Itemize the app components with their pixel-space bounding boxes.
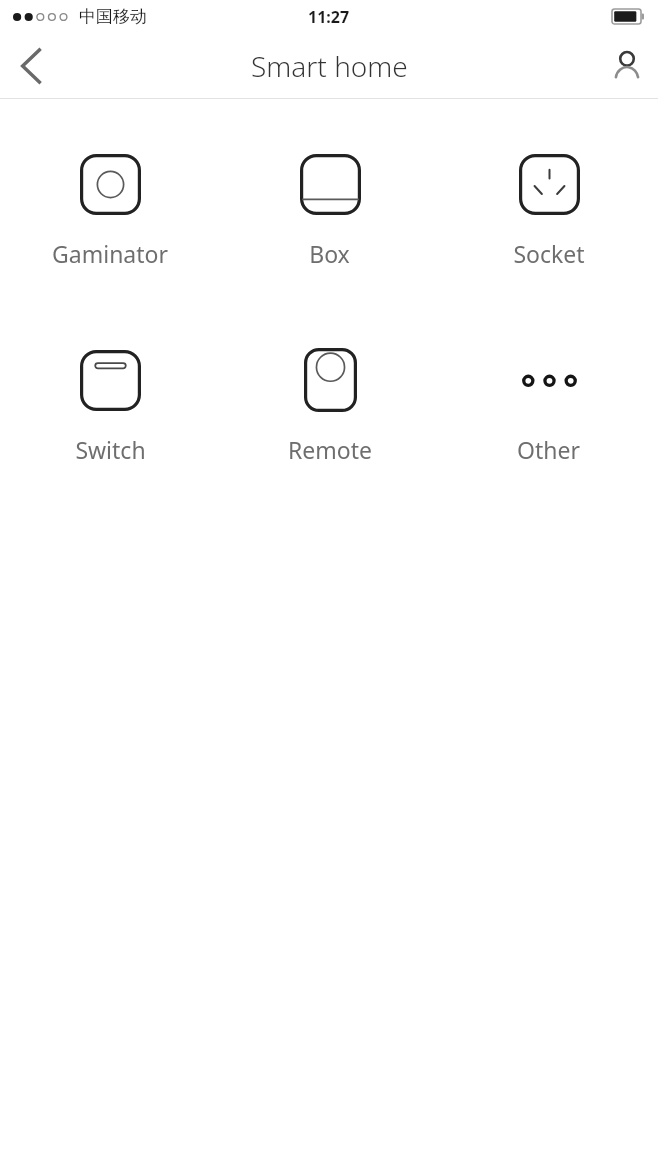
staticText: Gaminator (52, 238, 168, 269)
button[interactable]: Socket (439, 145, 658, 275)
button[interactable]: Remote (220, 341, 439, 471)
button[interactable]: Other (439, 341, 658, 471)
button[interactable]: Gaminator (0, 145, 220, 275)
button[interactable]: Account (596, 35, 658, 97)
staticText: Smart home (251, 47, 408, 85)
staticText: 中国移动 (79, 6, 147, 27)
staticText: Switch (75, 434, 146, 465)
button[interactable]: Switch (0, 341, 220, 471)
staticText: Socket (513, 238, 585, 269)
staticText: 11:27 (308, 6, 350, 28)
button[interactable]: Box (220, 145, 439, 275)
staticText: Remote (288, 434, 372, 465)
button[interactable]: Back (0, 35, 62, 97)
staticText: Other (517, 434, 580, 465)
staticText: Box (309, 238, 350, 269)
